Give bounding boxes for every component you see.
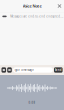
- button[interactable]: Type a message: [13, 67, 53, 73]
- button[interactable]: Camera: [7, 67, 12, 73]
- staticText: Send: [55, 68, 62, 72]
- button[interactable]: Send: [54, 67, 63, 73]
- staticText: Voice Note: [22, 3, 41, 9]
- button[interactable]: Attach: [1, 67, 6, 73]
- staticText: Messages are end-to-end encrypted. Tap t…: [10, 15, 63, 18]
- staticText: 0:08: [28, 101, 35, 104]
- staticText: Type a message: [14, 68, 34, 72]
- button[interactable]: Close: [55, 1, 64, 11]
